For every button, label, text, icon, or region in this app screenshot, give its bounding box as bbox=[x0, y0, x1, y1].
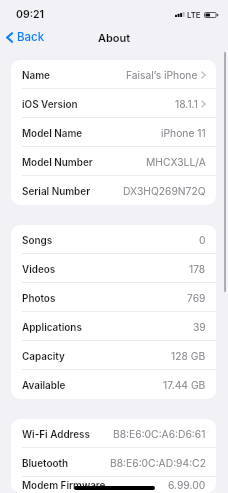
button[interactable]: Model Name bbox=[11, 118, 216, 147]
staticText: MHCX3LL/A bbox=[146, 156, 206, 168]
staticText: B8:E6:0C:AD:94:C2 bbox=[110, 457, 206, 469]
staticText: B8:E6:0C:A6:D6:61 bbox=[113, 428, 206, 440]
staticText: Model Name bbox=[22, 127, 83, 139]
staticText: 769 bbox=[187, 292, 206, 304]
staticText: 18.1.1 bbox=[175, 98, 198, 110]
staticText: Model Number bbox=[22, 156, 93, 168]
staticText: Serial Number bbox=[22, 185, 91, 197]
button[interactable]: Videos bbox=[11, 254, 216, 283]
staticText: Photos bbox=[22, 292, 56, 304]
staticText: 0 bbox=[199, 234, 206, 246]
staticText: Modem Firmware bbox=[22, 479, 106, 491]
staticText: Bluetooth bbox=[22, 457, 69, 469]
button[interactable]: Photos bbox=[11, 283, 216, 312]
staticText: Songs bbox=[22, 234, 53, 246]
button[interactable]: Songs bbox=[11, 225, 216, 254]
staticText: Applications bbox=[22, 321, 82, 333]
staticText: 39 bbox=[193, 321, 206, 333]
button[interactable]: Model Number bbox=[11, 147, 216, 176]
staticText: Back bbox=[17, 30, 45, 44]
button[interactable]: Available bbox=[11, 370, 216, 399]
button[interactable]: Back bbox=[6, 30, 45, 44]
staticText: iPhone 11 bbox=[161, 127, 206, 139]
staticText: 178 bbox=[189, 263, 206, 275]
staticText: 128 GB bbox=[171, 350, 206, 362]
staticText: Wi-Fi Address bbox=[22, 428, 90, 440]
button[interactable]: Modem Firmware bbox=[11, 477, 216, 493]
button[interactable]: Name bbox=[11, 60, 216, 89]
button[interactable]: Capacity bbox=[11, 341, 216, 370]
button[interactable]: Wi-Fi Address bbox=[11, 419, 216, 448]
button[interactable]: Applications bbox=[11, 312, 216, 341]
staticText: Available bbox=[22, 379, 66, 391]
staticText: DX3HQ269N72Q bbox=[123, 185, 206, 197]
staticText: 17.44 GB bbox=[163, 379, 206, 391]
staticText: 6.99.00 bbox=[168, 479, 206, 491]
staticText: 09:21 bbox=[16, 8, 44, 21]
staticText: iOS Version bbox=[22, 98, 78, 110]
staticText: Faisal’s iPhone bbox=[126, 69, 198, 81]
button[interactable]: iOS Version bbox=[11, 89, 216, 118]
staticText: Capacity bbox=[22, 350, 65, 362]
staticText: LTE bbox=[187, 10, 201, 19]
staticText: Name bbox=[22, 69, 50, 81]
button[interactable]: Serial Number bbox=[11, 176, 216, 205]
staticText: About bbox=[98, 31, 131, 44]
button[interactable]: Bluetooth bbox=[11, 448, 216, 477]
staticText: Videos bbox=[22, 263, 56, 275]
